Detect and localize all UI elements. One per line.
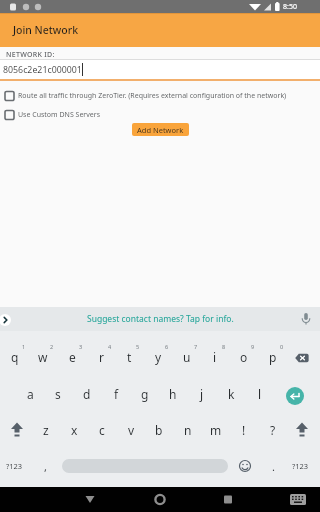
button[interactable]: o	[230, 340, 258, 374]
button[interactable]	[288, 344, 316, 372]
staticText: 9	[251, 343, 255, 350]
staticText: k	[228, 386, 235, 402]
staticText: g	[141, 386, 149, 402]
staticText: y	[155, 349, 162, 365]
staticText: 8056c2e21c000001	[3, 64, 82, 76]
staticText: !	[242, 422, 246, 438]
staticText: j	[200, 386, 204, 402]
staticText: i	[213, 349, 217, 365]
button[interactable]: n	[174, 413, 202, 447]
button[interactable]: e	[58, 340, 86, 374]
staticText: ?	[270, 422, 276, 438]
button[interactable]: c	[88, 413, 116, 447]
staticText: z	[43, 422, 49, 438]
staticText: q	[11, 349, 19, 365]
button[interactable]: s	[44, 377, 72, 411]
staticText: 4	[108, 343, 112, 350]
button[interactable]: Add Network	[132, 123, 189, 136]
button[interactable]: u	[173, 340, 201, 374]
staticText: e	[69, 349, 76, 365]
button[interactable]: ?	[259, 413, 287, 447]
button[interactable]: g	[131, 377, 159, 411]
staticText: 8	[222, 343, 226, 350]
button[interactable]: r	[87, 340, 115, 374]
button[interactable]: j	[188, 377, 216, 411]
button[interactable]	[238, 459, 252, 473]
staticText: c	[99, 422, 105, 438]
staticText: u	[183, 349, 191, 365]
staticText: w	[38, 349, 48, 365]
staticText: 5	[136, 343, 140, 350]
button[interactable]	[286, 487, 310, 512]
button[interactable]: d	[73, 377, 101, 411]
button[interactable]	[148, 487, 172, 512]
button[interactable]: x	[60, 413, 88, 447]
staticText: m	[210, 422, 222, 438]
button[interactable]: a	[16, 377, 44, 411]
button[interactable]: .	[259, 449, 287, 483]
button[interactable]: !	[230, 413, 258, 447]
button[interactable]	[5, 418, 29, 442]
staticText: ?123	[292, 461, 309, 471]
button[interactable]: l	[246, 377, 274, 411]
staticText: 1	[22, 343, 26, 350]
button[interactable]: Route all traffic through ZeroTier. (Req…	[0, 88, 320, 104]
button[interactable]: ,	[31, 449, 59, 483]
button[interactable]: m	[202, 413, 230, 447]
staticText: t	[127, 349, 132, 365]
staticText: v	[128, 422, 135, 438]
button[interactable]	[216, 487, 240, 512]
button[interactable]	[62, 459, 228, 473]
button[interactable]	[290, 418, 314, 442]
staticText: x	[71, 422, 78, 438]
button[interactable]	[78, 487, 102, 512]
button[interactable]: k	[217, 377, 245, 411]
staticText: h	[169, 386, 177, 402]
staticText: 0	[280, 343, 284, 350]
staticText: Route all traffic through ZeroTier. (Req…	[18, 91, 287, 101]
button[interactable]	[0, 314, 11, 326]
button[interactable]: h	[159, 377, 187, 411]
staticText: o	[240, 349, 248, 365]
staticText: l	[258, 386, 262, 402]
staticText: Add Network	[137, 125, 184, 135]
staticText: n	[184, 422, 192, 438]
staticText: f	[114, 386, 119, 402]
staticText: 7	[194, 343, 198, 350]
button[interactable]: Use Custom DNS Servers	[0, 107, 320, 123]
button[interactable]	[286, 387, 304, 405]
button[interactable]: Suggest contact names? Tap for info.	[0, 307, 320, 331]
staticText: 8:50	[283, 2, 297, 12]
button[interactable]: q	[1, 340, 29, 374]
staticText: NETWORK ID:	[6, 50, 55, 60]
button[interactable]: p	[259, 340, 287, 374]
staticText: p	[269, 349, 277, 365]
staticText: 3	[79, 343, 83, 350]
button[interactable]: t	[115, 340, 143, 374]
staticText: .	[272, 459, 275, 474]
staticText: ?123	[6, 461, 23, 471]
staticText: a	[27, 386, 34, 402]
button[interactable]: z	[32, 413, 60, 447]
staticText: s	[55, 386, 61, 402]
staticText: d	[83, 386, 91, 402]
staticText: ,	[44, 459, 47, 474]
staticText: 6	[165, 343, 169, 350]
button[interactable]: y	[144, 340, 172, 374]
button[interactable]	[298, 311, 314, 327]
staticText: Join Network	[13, 23, 79, 37]
button[interactable]: v	[117, 413, 145, 447]
staticText: Suggest contact names? Tap for info.	[87, 313, 234, 325]
staticText: b	[155, 422, 163, 438]
button[interactable]: 8056c2e21c000001	[0, 60, 320, 79]
button[interactable]: i	[201, 340, 229, 374]
button[interactable]: b	[145, 413, 173, 447]
staticText: 2	[50, 343, 54, 350]
staticText: r	[99, 349, 104, 365]
button[interactable]: w	[29, 340, 57, 374]
button[interactable]: f	[102, 377, 130, 411]
staticText: Use Custom DNS Servers	[18, 110, 100, 120]
